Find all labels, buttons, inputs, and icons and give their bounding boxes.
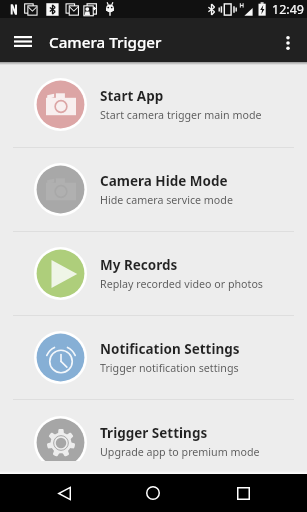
staticText: Trigger Settings bbox=[100, 424, 208, 442]
staticText: Camera Hide Mode bbox=[100, 172, 228, 190]
button[interactable]: My Records bbox=[0, 232, 307, 315]
staticText: Start App bbox=[100, 87, 164, 105]
button[interactable]: Camera Hide Mode bbox=[0, 148, 307, 231]
staticText: Trigger notification settings bbox=[100, 361, 239, 376]
staticText: Hide camera service mode bbox=[100, 193, 233, 208]
button[interactable]: Trigger Settings bbox=[0, 400, 307, 461]
button[interactable]: Recent apps bbox=[213, 474, 273, 512]
staticText: Upgrade app to premium mode bbox=[100, 445, 260, 460]
staticText: 12:49 bbox=[272, 1, 304, 18]
button[interactable]: More options bbox=[269, 18, 307, 62]
staticText: Camera Trigger bbox=[49, 32, 162, 53]
button[interactable]: Back bbox=[34, 474, 94, 512]
button[interactable]: Home bbox=[123, 474, 183, 512]
staticText: Replay recorded video or photos bbox=[100, 277, 263, 292]
staticText: Notification Settings bbox=[100, 340, 240, 358]
staticText: My Records bbox=[100, 256, 178, 274]
button[interactable]: Start App bbox=[0, 62, 307, 147]
button[interactable]: Notification Settings bbox=[0, 316, 307, 399]
button[interactable]: Open navigation drawer bbox=[0, 18, 45, 62]
staticText: Start camera trigger main mode bbox=[100, 108, 262, 123]
